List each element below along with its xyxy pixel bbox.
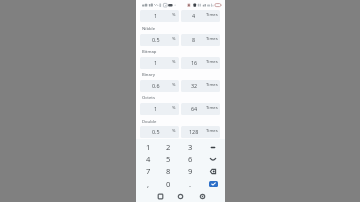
staticText: Nibble [142,26,156,32]
staticText: 3 [188,142,193,152]
staticText: 5 [166,154,171,164]
button[interactable]: 4 [138,153,159,165]
button[interactable]: Hide keyboard [202,153,223,165]
staticText: 0.5 [152,128,160,135]
staticText: , [147,179,150,189]
button[interactable]: 1 [138,141,159,153]
staticText: 7 [146,166,151,176]
button[interactable]: 1 [140,103,179,115]
staticText: 2 [166,142,171,152]
staticText: 9 [188,166,193,176]
button[interactable]: 3 [180,141,201,153]
staticText: 4 [192,12,196,19]
staticText: 16 [191,59,198,66]
button[interactable]: Backspace [202,165,223,177]
staticText: Times [206,36,218,42]
button[interactable]: 0.6 [140,80,179,92]
staticText: 4 [146,154,151,164]
staticText: Octets [142,95,155,101]
staticText: 0 [166,179,171,189]
staticText: % [172,105,176,111]
button[interactable]: 32 [181,80,220,92]
button[interactable]: 9 [180,165,201,177]
button[interactable]: 8 [181,34,220,46]
staticText: 1 [154,59,158,66]
button[interactable]: 1 [140,57,179,69]
staticText: 8 [166,166,171,176]
staticText: Times [206,128,218,134]
staticText: Times [206,82,218,88]
button[interactable]: 64 [181,103,220,115]
button[interactable]: 0.5 [140,34,179,46]
button[interactable]: , [138,178,159,190]
staticText: % [172,36,176,42]
staticText: 32 [191,82,198,89]
button[interactable]: 16 [181,57,220,69]
staticText: Times [206,105,218,111]
button[interactable]: Recents [151,190,169,202]
button[interactable]: 128 [181,126,220,138]
staticText: Bitmap [142,49,157,55]
button[interactable]: 6 [180,153,201,165]
staticText: Double [142,119,157,125]
button[interactable]: 0 [158,178,179,190]
button[interactable]: Home [171,190,189,202]
staticText: 1 [154,12,158,19]
button[interactable]: 8 [158,165,179,177]
button[interactable]: Confirm [209,181,218,187]
button[interactable]: Back [193,190,211,202]
staticText: 6 [188,154,193,164]
button[interactable]: 7 [138,165,159,177]
staticText: 1 [146,142,151,152]
button[interactable]: 2 [158,141,179,153]
button[interactable]: 0.5 [140,126,179,138]
staticText: Binary [142,72,155,78]
staticText: 1 [154,105,158,112]
button[interactable]: . [180,178,201,190]
staticText: % [172,12,176,18]
staticText: 0.5 [152,36,160,43]
staticText: Times [206,59,218,65]
staticText: 64 [191,105,198,112]
staticText: 128 [189,128,199,135]
staticText: 0.6 [152,82,160,89]
staticText: Times [206,12,218,18]
staticText: . [189,179,192,189]
button[interactable]: 4 [181,10,220,22]
staticText: % [172,128,176,134]
button[interactable]: 5 [158,153,179,165]
button[interactable]: Minus [202,141,223,153]
button[interactable]: 1 [140,10,179,22]
staticText: 8 [192,36,196,43]
staticText: % [172,59,176,65]
staticText: % [172,82,176,88]
